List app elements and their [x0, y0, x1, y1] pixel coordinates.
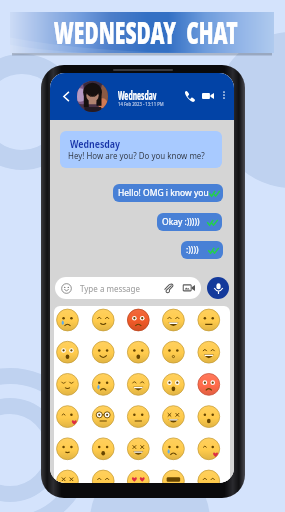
button[interactable]: Wednesday — [60, 131, 222, 168]
button[interactable]: Voice message — [207, 277, 229, 299]
button[interactable]: Emoji — [54, 306, 84, 336]
button[interactable]: Hello! OMG i know you — [113, 184, 223, 202]
staticText: Hello! OMG i know you — [118, 187, 209, 199]
button[interactable]: Emoji — [174, 434, 204, 464]
button[interactable]: Emoji — [84, 370, 114, 400]
button[interactable]: Emoji — [174, 306, 204, 336]
button[interactable]: Emoji — [114, 466, 144, 483]
button[interactable]: Emoji — [54, 466, 84, 483]
button[interactable]: Emoji — [54, 338, 84, 368]
button[interactable]: Call — [181, 88, 197, 104]
button[interactable]: Emoji — [84, 338, 114, 368]
staticText: Okay :))))) — [162, 216, 200, 228]
button[interactable]: Emoji — [174, 466, 204, 483]
staticText: 14 Feb 2023 - 13:11 PM — [118, 100, 164, 107]
button[interactable]: Type a message — [55, 277, 201, 299]
staticText: WEDNESDAY CHAT — [54, 12, 238, 53]
staticText: :)))) — [186, 244, 199, 256]
button[interactable]: Emoji — [84, 402, 114, 432]
button[interactable]: Emoji — [144, 370, 174, 400]
staticText: Wednesday — [70, 137, 121, 151]
button[interactable]: Emoji — [144, 338, 174, 368]
button[interactable]: Emoji — [114, 370, 144, 400]
button[interactable]: Back — [59, 89, 74, 104]
staticText: Hey! How are you? Do you know me? — [68, 150, 205, 162]
button[interactable]: Emoji — [54, 402, 84, 432]
button[interactable]: Emoji — [144, 434, 174, 464]
button[interactable]: Emoji — [174, 370, 204, 400]
button[interactable]: Emoji — [174, 402, 204, 432]
button[interactable]: Emoji — [144, 306, 174, 336]
button[interactable]: Emoji — [114, 402, 144, 432]
button[interactable]: More options — [217, 88, 231, 102]
staticText: Type a message — [80, 283, 141, 294]
button[interactable]: Camera — [182, 281, 196, 295]
button[interactable]: Attach file — [161, 281, 175, 295]
button[interactable]: Emoji — [114, 306, 144, 336]
button[interactable]: Emoji — [84, 466, 114, 483]
button[interactable]: Emoji — [114, 338, 144, 368]
button[interactable]: Emoji — [54, 370, 84, 400]
button[interactable]: Emoji — [174, 338, 204, 368]
button[interactable]: Emoji — [84, 434, 114, 464]
staticText: Wednesday — [118, 88, 157, 100]
button[interactable]: Emoji — [84, 306, 114, 336]
button[interactable]: Video call — [200, 88, 216, 104]
button[interactable]: :)))) — [181, 241, 223, 259]
button[interactable]: Emoji — [144, 466, 174, 483]
button[interactable]: Emoji — [144, 402, 174, 432]
button[interactable]: Emoji — [114, 434, 144, 464]
button[interactable]: Emoji — [54, 434, 84, 464]
button[interactable]: Okay :))))) — [157, 213, 222, 231]
